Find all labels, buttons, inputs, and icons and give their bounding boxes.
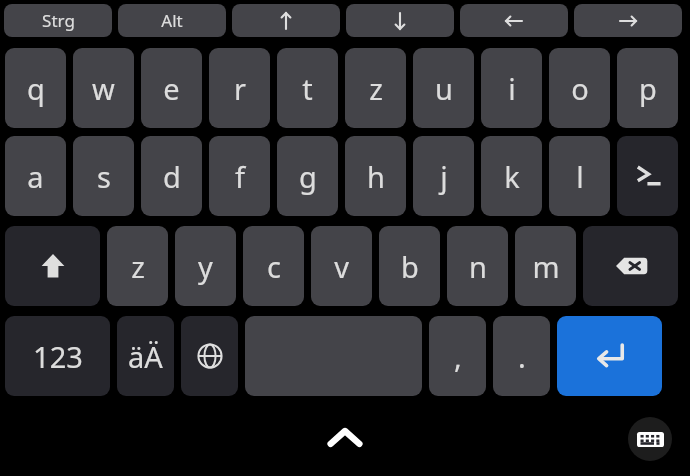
- button[interactable]: n: [447, 226, 508, 306]
- staticText: j: [440, 157, 448, 196]
- button[interactable]: Change language: [181, 316, 238, 396]
- staticText: Strg: [42, 9, 75, 32]
- button[interactable]: m: [515, 226, 576, 306]
- staticText: l: [576, 157, 584, 196]
- button[interactable]: v: [311, 226, 372, 306]
- button[interactable]: 123: [5, 316, 110, 396]
- staticText: t: [302, 69, 313, 108]
- staticText: y: [198, 247, 213, 286]
- staticText: r: [234, 69, 246, 108]
- button[interactable]: c: [243, 226, 304, 306]
- staticText: d: [163, 157, 181, 196]
- button[interactable]: äÄ: [117, 316, 174, 396]
- staticText: a: [27, 157, 44, 196]
- button[interactable]: Terminal: [617, 136, 678, 216]
- staticText: Alt: [161, 9, 183, 32]
- staticText: e: [163, 69, 180, 108]
- staticText: 123: [33, 337, 83, 376]
- button[interactable]: k: [481, 136, 542, 216]
- staticText: n: [469, 247, 487, 286]
- button[interactable]: q: [5, 48, 66, 128]
- staticText: äÄ: [128, 337, 163, 376]
- button[interactable]: Shift: [5, 226, 100, 306]
- button[interactable]: Arrow left: [460, 4, 568, 37]
- button[interactable]: Backspace: [583, 226, 678, 306]
- button[interactable]: Enter: [557, 316, 662, 396]
- button[interactable]: f: [209, 136, 270, 216]
- staticText: k: [504, 157, 520, 196]
- button[interactable]: w: [73, 48, 134, 128]
- button[interactable]: o: [549, 48, 610, 128]
- button[interactable]: Switch keyboard: [628, 417, 672, 461]
- staticText: v: [334, 247, 349, 286]
- button[interactable]: Space: [245, 316, 422, 396]
- staticText: i: [508, 69, 516, 108]
- button[interactable]: Hide keyboard: [324, 418, 366, 460]
- button[interactable]: u: [413, 48, 474, 128]
- button[interactable]: p: [617, 48, 678, 128]
- staticText: b: [401, 247, 419, 286]
- button[interactable]: j: [413, 136, 474, 216]
- staticText: m: [532, 247, 560, 286]
- button[interactable]: i: [481, 48, 542, 128]
- button[interactable]: t: [277, 48, 338, 128]
- button[interactable]: g: [277, 136, 338, 216]
- staticText: z: [369, 69, 383, 108]
- staticText: s: [97, 157, 111, 196]
- button[interactable]: ,: [429, 316, 486, 396]
- staticText: c: [267, 247, 281, 286]
- staticText: .: [518, 337, 526, 376]
- button[interactable]: a: [5, 136, 66, 216]
- button[interactable]: Strg: [4, 4, 112, 37]
- staticText: w: [92, 69, 115, 108]
- button[interactable]: e: [141, 48, 202, 128]
- staticText: o: [571, 69, 589, 108]
- staticText: z: [131, 247, 145, 286]
- staticText: ,: [454, 337, 462, 376]
- button[interactable]: .: [493, 316, 550, 396]
- button[interactable]: b: [379, 226, 440, 306]
- button[interactable]: y: [175, 226, 236, 306]
- button[interactable]: Arrow right: [574, 4, 682, 37]
- staticText: h: [367, 157, 385, 196]
- staticText: u: [435, 69, 453, 108]
- button[interactable]: r: [209, 48, 270, 128]
- staticText: q: [27, 69, 45, 108]
- button[interactable]: h: [345, 136, 406, 216]
- button[interactable]: Arrow down: [346, 4, 454, 37]
- staticText: p: [639, 69, 657, 108]
- button[interactable]: z: [107, 226, 168, 306]
- button[interactable]: Arrow up: [232, 4, 340, 37]
- button[interactable]: l: [549, 136, 610, 216]
- button[interactable]: d: [141, 136, 202, 216]
- button[interactable]: Alt: [118, 4, 226, 37]
- staticText: f: [235, 157, 245, 196]
- button[interactable]: s: [73, 136, 134, 216]
- button[interactable]: z: [345, 48, 406, 128]
- staticText: g: [299, 157, 317, 196]
